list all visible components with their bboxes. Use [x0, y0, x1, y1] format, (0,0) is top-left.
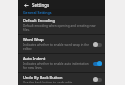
button[interactable]: Toggle off — [93, 77, 102, 82]
button[interactable]: Undo By Back Button — [18, 73, 105, 85]
button[interactable]: Default Encoding — [18, 16, 105, 34]
staticText: Auto Indent — [23, 56, 46, 61]
button[interactable]: Auto Indent — [18, 54, 105, 72]
button[interactable]: Toggle off — [93, 42, 102, 47]
staticText: Word Wrap — [23, 37, 44, 42]
button[interactable]: Word Wrap — [18, 35, 105, 53]
staticText: Indicates whether to enable auto indenta… — [23, 62, 91, 70]
staticText: Use the back button to undo edits. — [23, 81, 74, 83]
staticText: Default encoding when opening and creati… — [23, 24, 102, 32]
button[interactable]: Back — [22, 1, 30, 9]
staticText: Settings — [32, 2, 50, 8]
staticText: Indicates whether to enable word wrap in… — [23, 43, 91, 51]
staticText: Default Encoding — [23, 18, 55, 23]
staticText: General Settings — [23, 10, 52, 15]
button[interactable]: Toggle on — [93, 61, 102, 66]
staticText: Undo By Back Button — [23, 75, 63, 80]
